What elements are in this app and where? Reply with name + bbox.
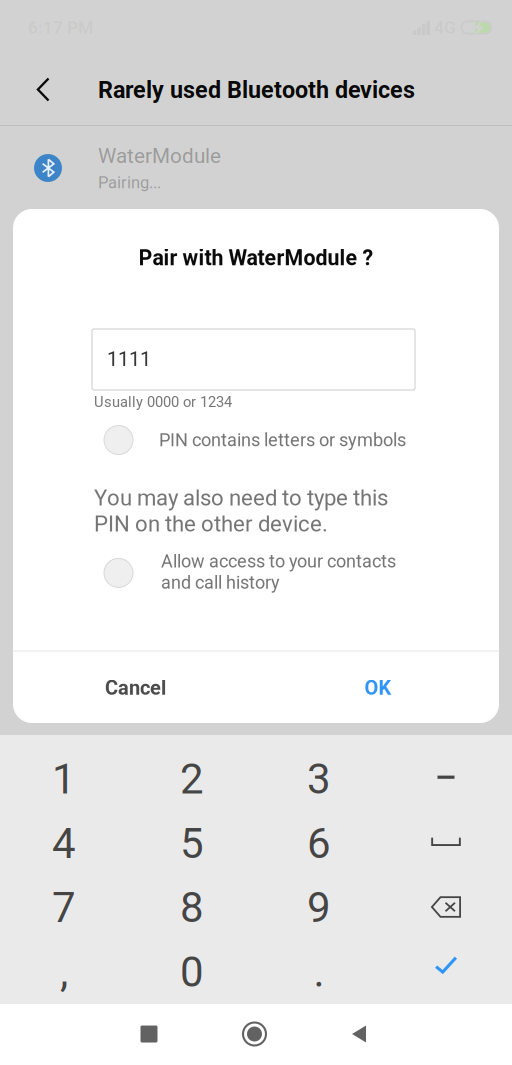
- button[interactable]: Back: [316, 1003, 402, 1064]
- staticText: 2: [180, 755, 204, 804]
- button[interactable]: Allow access to your contacts and call h…: [13, 543, 499, 601]
- button[interactable]: Cancel: [58, 652, 213, 724]
- staticText: You may also need to type this PIN on th…: [94, 485, 388, 537]
- button[interactable]: WaterModule: [0, 126, 512, 210]
- button[interactable]: 6: [255, 812, 383, 876]
- staticText: ,: [60, 948, 68, 997]
- button[interactable]: 5: [128, 812, 256, 876]
- staticText: 9: [307, 883, 331, 932]
- staticText: Cancel: [105, 676, 166, 700]
- staticText: 6: [307, 819, 331, 868]
- button[interactable]: 3: [255, 747, 383, 811]
- button[interactable]: 9: [255, 876, 383, 940]
- button[interactable]: Home: [211, 1003, 297, 1064]
- button[interactable]: Backspace: [382, 875, 510, 939]
- staticText: Rarely used Bluetooth devices: [98, 76, 415, 104]
- staticText: 4: [52, 819, 76, 868]
- staticText: .: [313, 948, 324, 997]
- staticText: 8: [180, 883, 204, 932]
- button[interactable]: 1: [0, 747, 128, 811]
- button[interactable]: 2: [128, 747, 256, 811]
- staticText: Allow access to your contacts and call h…: [161, 551, 396, 593]
- button[interactable]: 7: [0, 876, 128, 940]
- staticText: WaterModule: [98, 144, 221, 168]
- button[interactable]: Back: [8, 55, 79, 125]
- staticText: 3: [307, 755, 331, 804]
- staticText: 7: [52, 883, 76, 932]
- button[interactable]: 0: [128, 940, 256, 1004]
- button[interactable]: Dash: [382, 745, 510, 809]
- staticText: 5: [180, 819, 204, 868]
- button[interactable]: Done: [382, 933, 510, 997]
- staticText: OK: [364, 676, 391, 700]
- staticText: PIN contains letters or symbols: [159, 429, 406, 451]
- button[interactable]: .: [255, 940, 383, 1004]
- button[interactable]: ,: [0, 940, 128, 1004]
- staticText: 1: [52, 755, 76, 804]
- button[interactable]: OK: [316, 652, 440, 724]
- staticText: Pair with WaterModule ?: [138, 245, 373, 270]
- staticText: 1111: [107, 348, 151, 371]
- staticText: 0: [180, 948, 204, 997]
- button[interactable]: Space: [382, 810, 510, 874]
- button[interactable]: 8: [128, 876, 256, 940]
- button[interactable]: PIN contains letters or symbols: [13, 415, 499, 465]
- staticText: Pairing...: [98, 173, 161, 192]
- button[interactable]: 4: [0, 812, 128, 876]
- staticText: Usually 0000 or 1234: [94, 393, 232, 411]
- button[interactable]: Recent apps: [106, 1003, 192, 1064]
